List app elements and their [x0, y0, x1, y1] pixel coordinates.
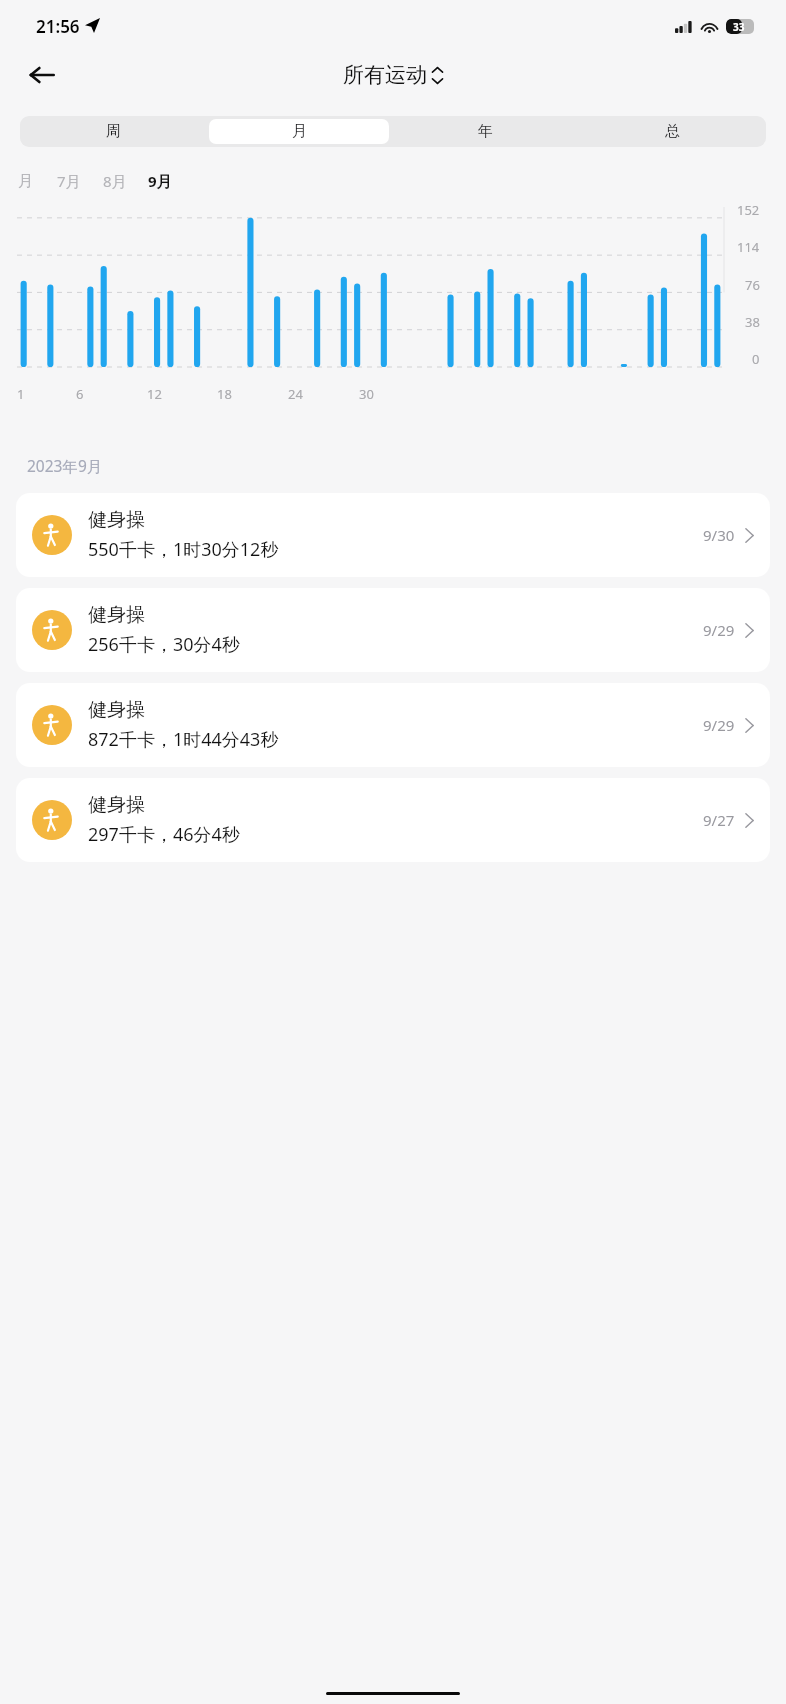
staticText: 1 [17, 385, 25, 403]
staticText: 年 [478, 122, 493, 141]
button[interactable]: 月 [209, 119, 389, 144]
other: 查看详情 [745, 623, 754, 638]
staticText: 38 [745, 313, 760, 331]
staticText: 872千卡，1时44分43秒 [88, 727, 279, 752]
staticText: 6 [76, 385, 84, 403]
staticText: 9/30 [703, 525, 735, 545]
staticText: 114 [737, 238, 760, 256]
staticText: 所有运动 [343, 62, 427, 88]
staticText: 12 [147, 385, 162, 403]
staticText: 30 [359, 385, 374, 403]
staticText: 76 [745, 276, 760, 294]
staticText: 9/29 [703, 620, 735, 640]
button[interactable]: 所有运动 [343, 62, 443, 88]
button[interactable]: 健身操 [16, 493, 770, 577]
staticText: 2023年9月 [27, 455, 103, 476]
staticText: 21:56 [36, 15, 80, 38]
staticText: 7月 [57, 171, 81, 191]
staticText: 8月 [103, 171, 127, 191]
staticText: 24 [288, 385, 303, 403]
staticText: 0 [752, 350, 760, 368]
staticText: 月 [18, 172, 33, 191]
staticText: 256千卡，30分4秒 [88, 632, 240, 657]
button[interactable]: 年 [395, 119, 576, 144]
staticText: 健身操 [88, 508, 145, 532]
staticText: 总 [665, 122, 680, 141]
staticText: 33 [733, 20, 745, 34]
other: 查看详情 [745, 813, 754, 828]
button[interactable]: 健身操 [16, 588, 770, 672]
button[interactable]: 返回 [18, 51, 66, 99]
staticText: 健身操 [88, 793, 145, 817]
other: 查看详情 [745, 528, 754, 543]
button[interactable]: 总 [582, 119, 763, 144]
staticText: 健身操 [88, 698, 145, 722]
other: 查看详情 [745, 718, 754, 733]
staticText: 9/29 [703, 715, 735, 735]
staticText: 550千卡，1时30分12秒 [88, 537, 279, 562]
staticText: 健身操 [88, 603, 145, 627]
button[interactable]: 周 [23, 119, 203, 144]
staticText: 周 [106, 122, 121, 141]
staticText: 月 [292, 122, 307, 141]
button[interactable]: 健身操 [16, 683, 770, 767]
staticText: 152 [737, 201, 760, 219]
button[interactable]: 健身操 [16, 778, 770, 862]
staticText: 9/27 [703, 810, 735, 830]
staticText: 18 [217, 385, 232, 403]
staticText: 9月 [148, 171, 172, 191]
staticText: 297千卡，46分4秒 [88, 822, 240, 847]
